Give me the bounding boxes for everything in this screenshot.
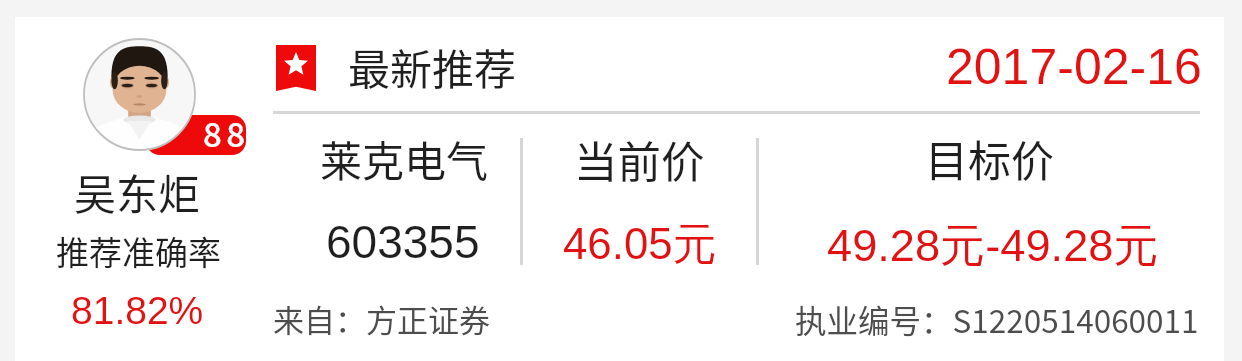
staticText: 49.28元-49.28元 — [827, 217, 1159, 274]
staticText: 当前价 — [574, 128, 705, 191]
staticText: 执业编号：S1220514060011 — [795, 296, 1199, 342]
staticText: 推荐准确率 — [56, 227, 221, 275]
button[interactable]: 88 — [15, 17, 1224, 361]
staticText: 46.05元 — [563, 217, 717, 272]
staticText: 603355 — [326, 216, 480, 267]
staticText: 88 — [203, 115, 246, 149]
staticText: 目标价 — [925, 127, 1054, 189]
staticText: 81.82% — [71, 289, 204, 333]
staticText: 吴东炬 — [74, 161, 201, 222]
staticText: 来自：方正证券 — [273, 296, 490, 341]
staticText: 莱克电气 — [320, 128, 489, 189]
staticText: 最新推荐 — [348, 36, 517, 97]
staticText: 2017-02-16 — [946, 39, 1202, 95]
button[interactable]: Analyst portrait — [83, 38, 196, 151]
other: Latest recommendation — [276, 45, 316, 91]
